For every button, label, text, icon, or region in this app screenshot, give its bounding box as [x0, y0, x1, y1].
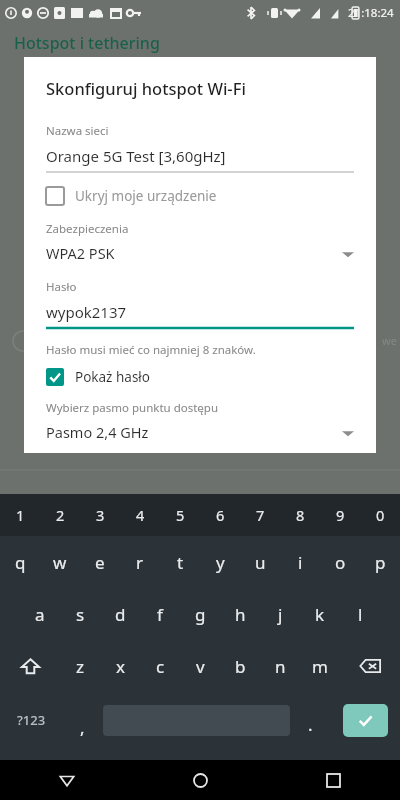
button[interactable]: Recent apps [267, 760, 400, 800]
staticText: . [308, 713, 313, 736]
button[interactable]: v [180, 640, 220, 692]
button[interactable]: Zabezpieczenia [46, 221, 354, 263]
button[interactable]: i [280, 536, 320, 588]
staticText: Hasło [46, 279, 77, 295]
staticText: Wybierz pasmo punktu dostępu [46, 400, 218, 416]
staticText: 21:18:24 [348, 5, 394, 21]
button[interactable]: m [300, 640, 340, 692]
button[interactable]: w [40, 536, 80, 588]
staticText: Nazwa sieci [46, 123, 109, 139]
staticText: 9 [336, 505, 345, 525]
staticText: ?123 [17, 711, 46, 729]
button[interactable]: 7 [240, 494, 280, 536]
staticText: g [195, 603, 206, 626]
staticText: e [95, 551, 105, 574]
staticText: j [278, 603, 283, 626]
button[interactable]: 5 [160, 494, 200, 536]
staticText: y [216, 551, 225, 574]
staticText: z [76, 655, 84, 678]
staticText: 8 [296, 505, 305, 525]
button[interactable]: 0 [360, 494, 400, 536]
button[interactable]: Nazwa sieci [46, 123, 354, 173]
staticText: f [157, 603, 163, 626]
button[interactable]: d [100, 588, 140, 640]
button[interactable]: y [200, 536, 240, 588]
button[interactable]: Shift [0, 640, 60, 692]
staticText: k [315, 603, 325, 626]
button[interactable]: c [140, 640, 180, 692]
button[interactable]: 1 [0, 494, 40, 536]
button[interactable]: 4 [120, 494, 160, 536]
button[interactable]: s [60, 588, 100, 640]
staticText: Skonfiguruj hotspot Wi-Fi [46, 77, 246, 99]
button[interactable]: Pokaż hasło [46, 368, 376, 386]
button[interactable]: a [20, 588, 60, 640]
button[interactable]: h [220, 588, 260, 640]
staticText: x [116, 655, 125, 678]
button[interactable]: q [0, 536, 40, 588]
button[interactable]: o [320, 536, 360, 588]
staticText: n [275, 655, 286, 678]
staticText: o [335, 551, 346, 574]
button[interactable]: l [340, 588, 380, 640]
button[interactable]: 3 [80, 494, 120, 536]
staticText: t [177, 551, 184, 574]
button[interactable]: . [290, 692, 331, 748]
button[interactable]: Home [134, 760, 267, 800]
staticText: r [136, 551, 144, 574]
button[interactable]: b [220, 640, 260, 692]
button[interactable]: 6 [200, 494, 240, 536]
staticText: Hotspot i tethering [14, 32, 160, 54]
button[interactable]: p [360, 536, 400, 588]
staticText: 7 [256, 505, 265, 525]
button[interactable]: Ukryj moje urządzenie [46, 187, 376, 205]
staticText: 6 [216, 505, 225, 525]
button[interactable]: Enter [343, 704, 388, 737]
staticText: Ukryj moje urządzenie [75, 187, 217, 205]
staticText: Pasmo 2,4 GHz [46, 422, 149, 442]
button[interactable]: ?123 [0, 692, 62, 748]
button[interactable]: , [62, 692, 103, 748]
button[interactable]: z [60, 640, 100, 692]
staticText: we [382, 333, 397, 348]
button[interactable]: Backspace [340, 640, 400, 692]
staticText: 4 [136, 505, 145, 525]
staticText: , [80, 716, 85, 739]
button[interactable]: u [240, 536, 280, 588]
button[interactable]: 8 [280, 494, 320, 536]
button[interactable]: 2 [40, 494, 80, 536]
button[interactable]: Hasło [46, 279, 354, 329]
button[interactable]: e [80, 536, 120, 588]
staticText: Orange 5G Test [3,60gHz] [46, 146, 226, 166]
button[interactable]: Hotspot i tethering [14, 32, 160, 54]
button[interactable]: x [100, 640, 140, 692]
staticText: s [76, 603, 85, 626]
button[interactable]: 9 [320, 494, 360, 536]
staticText: Pokaż hasło [75, 368, 151, 386]
button[interactable]: Wybierz pasmo punktu dostępu [46, 400, 354, 442]
button[interactable]: g [180, 588, 220, 640]
button[interactable]: Back [0, 760, 134, 800]
button[interactable]: t [160, 536, 200, 588]
button[interactable]: j [260, 588, 300, 640]
button[interactable]: f [140, 588, 180, 640]
staticText: 3 [96, 505, 105, 525]
staticText: Hasło musi mieć co najmniej 8 znaków. [46, 342, 256, 358]
staticText: WPA2 PSK [46, 243, 115, 263]
staticText: b [235, 655, 246, 678]
staticText: Zabezpieczenia [46, 221, 129, 237]
staticText: m [312, 655, 328, 678]
staticText: u [255, 551, 266, 574]
staticText: p [375, 551, 386, 574]
staticText: 2 [56, 505, 65, 525]
button[interactable]: n [260, 640, 300, 692]
staticText: d [115, 603, 126, 626]
staticText: 5 [176, 505, 185, 525]
staticText: q [15, 551, 26, 574]
staticText: v [196, 655, 205, 678]
button[interactable]: r [120, 536, 160, 588]
staticText: w [53, 551, 67, 574]
staticText: c [156, 655, 165, 678]
button[interactable]: k [300, 588, 340, 640]
